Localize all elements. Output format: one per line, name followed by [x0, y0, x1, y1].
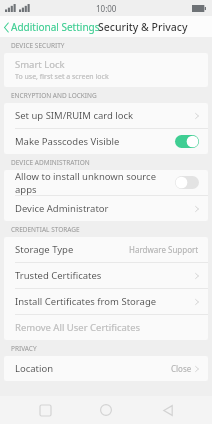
staticText: Device Administrator [15, 202, 195, 215]
button[interactable]: Location [4, 356, 208, 381]
button[interactable]: Trusted Certificates [4, 263, 208, 288]
staticText: Allow to install unknown source apps [15, 170, 171, 195]
button[interactable]: Install Certificates from Storage [4, 289, 208, 314]
staticText: Storage Type [15, 243, 129, 256]
staticText: Remove All User Certificates [15, 321, 199, 334]
button[interactable]: Allow to install unknown source apps [4, 170, 208, 195]
other: Off [175, 176, 199, 189]
button[interactable]: Home [89, 396, 123, 424]
staticText: Location [15, 362, 171, 375]
button[interactable]: Make Passcodes Visible [4, 129, 208, 154]
button[interactable]: Recents [28, 396, 62, 424]
button[interactable]: Remove All User Certificates [4, 315, 208, 340]
staticText: Additional Settings [11, 20, 100, 34]
staticText: Smart Lock [15, 58, 65, 71]
button[interactable]: Set up SIM/RUIM card lock [4, 103, 208, 128]
staticText: ENCRYPTION AND LOCKING [11, 91, 97, 100]
button[interactable]: Storage Type [4, 237, 208, 262]
staticText: Trusted Certificates [15, 269, 195, 282]
staticText: Make Passcodes Visible [15, 135, 171, 148]
button[interactable]: Additional Settings [0, 17, 104, 37]
staticText: Set up SIM/RUIM card lock [15, 109, 195, 122]
staticText: To use, first set a screen lock [15, 72, 109, 82]
staticText: Security & Privacy [98, 20, 188, 34]
staticText: PRIVACY [11, 344, 37, 353]
staticText: 10:00 [96, 3, 117, 14]
staticText: DEVICE SECURITY [11, 41, 65, 50]
staticText: Install Certificates from Storage [15, 295, 195, 308]
button[interactable]: Smart Lock [4, 53, 208, 87]
button[interactable]: Device Administrator [4, 196, 208, 221]
other: On [175, 135, 199, 148]
staticText: Close [171, 363, 192, 374]
staticText: DEVICE ADMINISTRATION [11, 158, 90, 167]
staticText: CREDENTIAL STORAGE [11, 225, 80, 234]
button[interactable]: Back [151, 396, 185, 424]
staticText: Hardware Support [129, 244, 199, 255]
